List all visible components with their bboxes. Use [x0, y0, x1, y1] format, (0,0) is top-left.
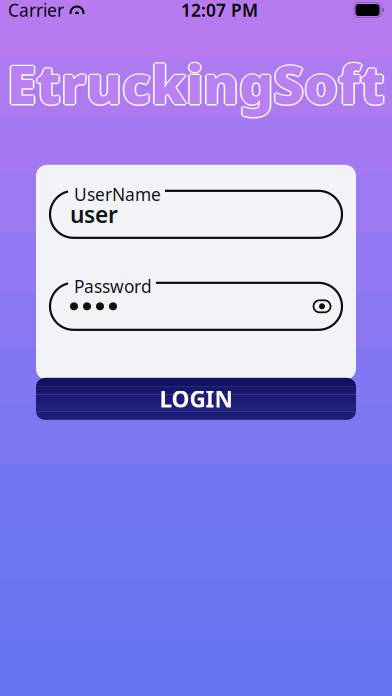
button[interactable]: LOGIN: [36, 380, 356, 422]
staticText: 12:07 PM: [181, 0, 258, 21]
staticText: EtruckingSoft: [6, 48, 384, 119]
staticText: LOGIN: [159, 384, 232, 414]
staticText: EtruckingSoft: [8, 48, 386, 119]
staticText: Password: [74, 275, 152, 298]
staticText: EtruckingSoft: [7, 47, 385, 117]
staticText: user: [70, 199, 118, 229]
staticText: EtruckingSoft: [7, 49, 385, 120]
staticText: Carrier: [8, 0, 64, 21]
staticText: EtruckingSoft: [7, 48, 385, 119]
button[interactable]: Show password: [312, 296, 342, 316]
staticText: UserName: [74, 183, 161, 206]
